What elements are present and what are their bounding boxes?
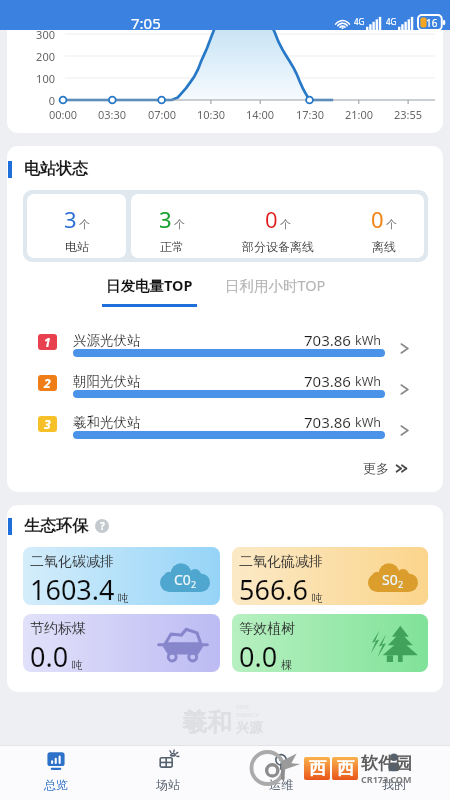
staticText: 部分设备离线: [242, 239, 314, 254]
staticText: 2: [191, 578, 197, 590]
staticText: 0: [371, 204, 384, 234]
other: View station details: [398, 382, 411, 397]
staticText: 703.86: [304, 412, 351, 432]
staticText: 23:55: [383, 107, 433, 122]
staticText: 日利用小时TOP: [225, 275, 326, 295]
staticText: kWh: [355, 332, 382, 349]
staticText: 07:00: [137, 107, 187, 122]
button[interactable]: 日发电量TOP: [102, 275, 197, 307]
staticText: 我的: [382, 777, 406, 792]
staticText: 703.86: [304, 371, 351, 391]
staticText: 离线: [372, 239, 396, 254]
staticText: 个: [174, 217, 185, 231]
staticText: 10:30: [186, 107, 236, 122]
staticText: 17:30: [285, 107, 335, 122]
staticText: 正常: [160, 239, 184, 254]
staticText: 场站: [156, 777, 180, 792]
staticText: 生态环保: [24, 516, 88, 536]
staticText: 703.86: [304, 330, 351, 350]
staticText: 等效植树: [239, 620, 295, 638]
staticText: 西: [309, 758, 326, 779]
staticText: 566.6: [239, 571, 309, 605]
button[interactable]: 等效植树: [232, 614, 428, 672]
staticText: 3: [64, 204, 77, 234]
staticText: C0: [174, 570, 191, 589]
staticText: ENERGY: [236, 711, 259, 719]
button[interactable]: 节约标煤: [23, 614, 220, 672]
staticText: 软件园: [361, 753, 412, 774]
staticText: ?: [100, 519, 105, 533]
staticText: 日发电量TOP: [106, 275, 193, 295]
staticText: 运维: [269, 777, 293, 792]
button[interactable]: 3: [27, 194, 126, 258]
staticText: kWh: [355, 414, 382, 431]
staticText: 电站: [65, 239, 89, 254]
button[interactable]: 0: [344, 194, 424, 258]
staticText: 0.0: [239, 638, 278, 672]
staticText: 个: [280, 217, 291, 231]
staticText: kWh: [355, 373, 382, 390]
staticText: 个: [386, 217, 397, 231]
staticText: 4G: [386, 16, 397, 27]
staticText: 2: [44, 375, 51, 391]
staticText: 4G: [354, 16, 365, 27]
staticText: 200: [7, 49, 55, 64]
other: View station details: [398, 423, 411, 438]
staticText: 1: [44, 334, 51, 350]
button[interactable]: 1: [7, 330, 443, 371]
staticText: 更多: [363, 460, 389, 476]
staticText: 西: [337, 758, 354, 779]
staticText: 吨: [118, 591, 129, 605]
staticText: 棵: [281, 658, 292, 672]
staticText: 羲和光伏站: [73, 414, 141, 431]
button[interactable]: 2: [7, 371, 443, 412]
staticText: 0: [7, 93, 55, 108]
staticText: 吨: [312, 591, 323, 605]
staticText: XIHE: [236, 703, 250, 711]
staticText: 3: [159, 204, 172, 234]
staticText: 2: [398, 578, 404, 590]
staticText: 3: [44, 416, 51, 432]
staticText: 14:00: [235, 107, 285, 122]
button[interactable]: 运维: [224, 745, 337, 800]
staticText: 总览: [44, 777, 68, 792]
staticText: 二氧化碳减排: [30, 553, 114, 571]
button[interactable]: 二氧化硫减排: [232, 547, 428, 605]
button[interactable]: 更多: [363, 460, 410, 476]
staticText: 100: [7, 71, 55, 86]
staticText: 吨: [72, 658, 83, 672]
staticText: 二氧化硫减排: [239, 553, 323, 571]
staticText: 16: [426, 16, 438, 30]
staticText: 00:00: [38, 107, 88, 122]
staticText: S0: [382, 570, 398, 589]
staticText: 兴源光伏站: [73, 332, 141, 349]
button[interactable]: 0: [212, 194, 344, 258]
other: View station details: [398, 341, 411, 356]
button[interactable]: 3: [7, 412, 443, 453]
button[interactable]: 我的: [337, 745, 450, 800]
staticText: 7:05: [131, 13, 161, 33]
staticText: 300: [7, 30, 55, 42]
staticText: 节约标煤: [30, 620, 86, 638]
staticText: 03:30: [87, 107, 137, 122]
staticText: CR173.COM: [361, 773, 412, 785]
staticText: 1603.4: [30, 571, 115, 605]
staticText: 兴源: [236, 719, 262, 735]
button[interactable]: 二氧化碳减排: [23, 547, 220, 605]
staticText: 电站状态: [24, 159, 88, 179]
staticText: 21:00: [334, 107, 384, 122]
button[interactable]: 场站: [112, 745, 224, 800]
button[interactable]: 3: [131, 194, 212, 258]
staticText: 0.0: [30, 638, 69, 672]
button[interactable]: 总览: [0, 745, 112, 800]
staticText: 个: [79, 217, 90, 231]
staticText: 羲和: [182, 707, 232, 738]
button[interactable]: 日利用小时TOP: [225, 275, 326, 295]
staticText: 朝阳光伏站: [73, 373, 141, 390]
staticText: 0: [265, 204, 278, 234]
